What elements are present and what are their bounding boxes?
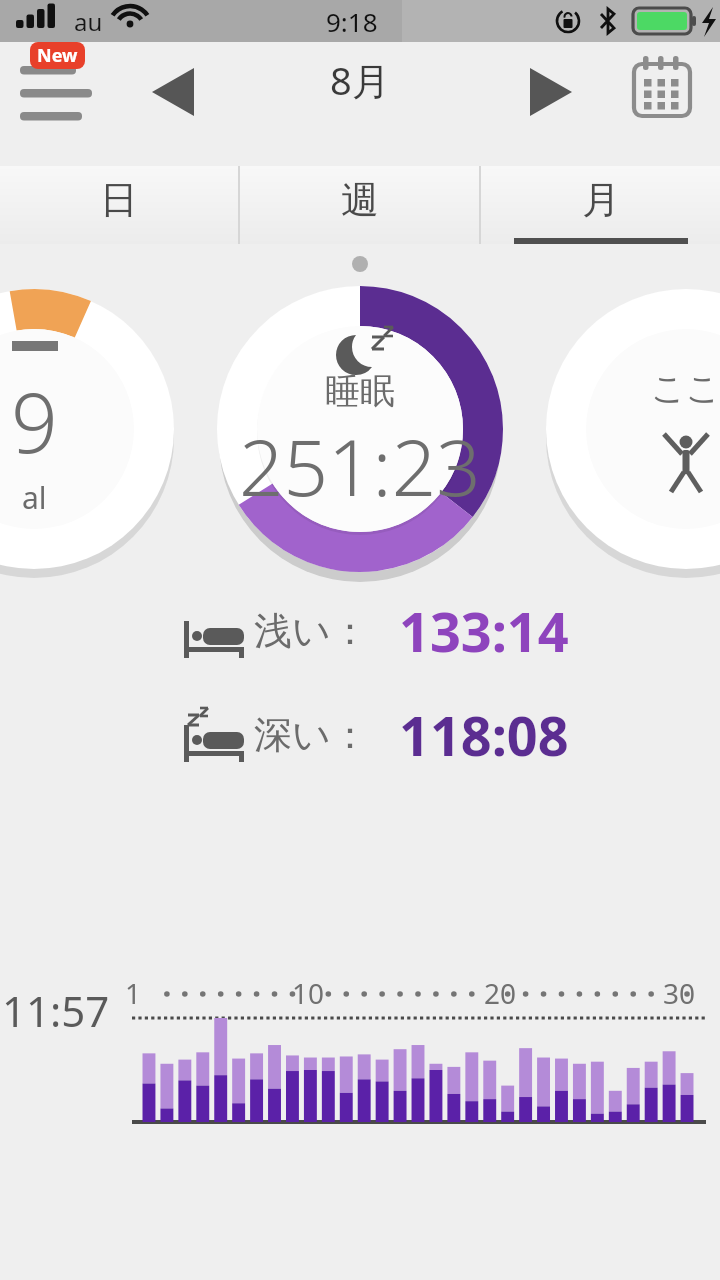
staticText: 133:14 bbox=[399, 594, 569, 668]
button[interactable]: 睡眠 bbox=[213, 282, 507, 576]
staticText: 週 bbox=[341, 176, 379, 224]
staticText: 睡眠 bbox=[325, 369, 395, 413]
staticText: 日 bbox=[100, 176, 138, 224]
button[interactable]: Calendar bbox=[622, 42, 702, 122]
staticText: 20 bbox=[484, 974, 517, 1012]
button[interactable]: 週 bbox=[240, 166, 479, 244]
button[interactable]: 浅い： bbox=[0, 594, 720, 668]
button[interactable]: Heart rate bbox=[540, 283, 720, 575]
staticText: 10 bbox=[292, 974, 325, 1012]
staticText: 浅い： bbox=[254, 607, 369, 655]
staticText: ここ bbox=[651, 367, 720, 410]
staticText: New bbox=[37, 43, 78, 68]
staticText: 118:08 bbox=[399, 698, 569, 772]
staticText: 月 bbox=[582, 176, 620, 224]
button[interactable]: 深い： bbox=[0, 698, 720, 772]
staticText: 9 bbox=[11, 365, 58, 477]
button[interactable]: 日 bbox=[0, 166, 238, 244]
staticText: 8月 bbox=[330, 54, 390, 106]
staticText: 9:18 bbox=[326, 4, 378, 39]
staticText: 1 bbox=[125, 974, 142, 1012]
staticText: 深い： bbox=[254, 711, 369, 759]
button[interactable]: Menu bbox=[6, 44, 90, 120]
staticText: 30 bbox=[663, 974, 696, 1012]
button[interactable]: Calories bbox=[0, 283, 180, 575]
staticText: al bbox=[22, 477, 47, 518]
button[interactable]: 月 bbox=[481, 166, 720, 244]
button[interactable]: Previous month bbox=[132, 42, 212, 122]
staticText: 251:23 bbox=[239, 413, 481, 519]
staticText: 11:57 bbox=[2, 982, 110, 1039]
staticText: au bbox=[74, 5, 103, 38]
button[interactable]: Next month bbox=[512, 42, 592, 122]
